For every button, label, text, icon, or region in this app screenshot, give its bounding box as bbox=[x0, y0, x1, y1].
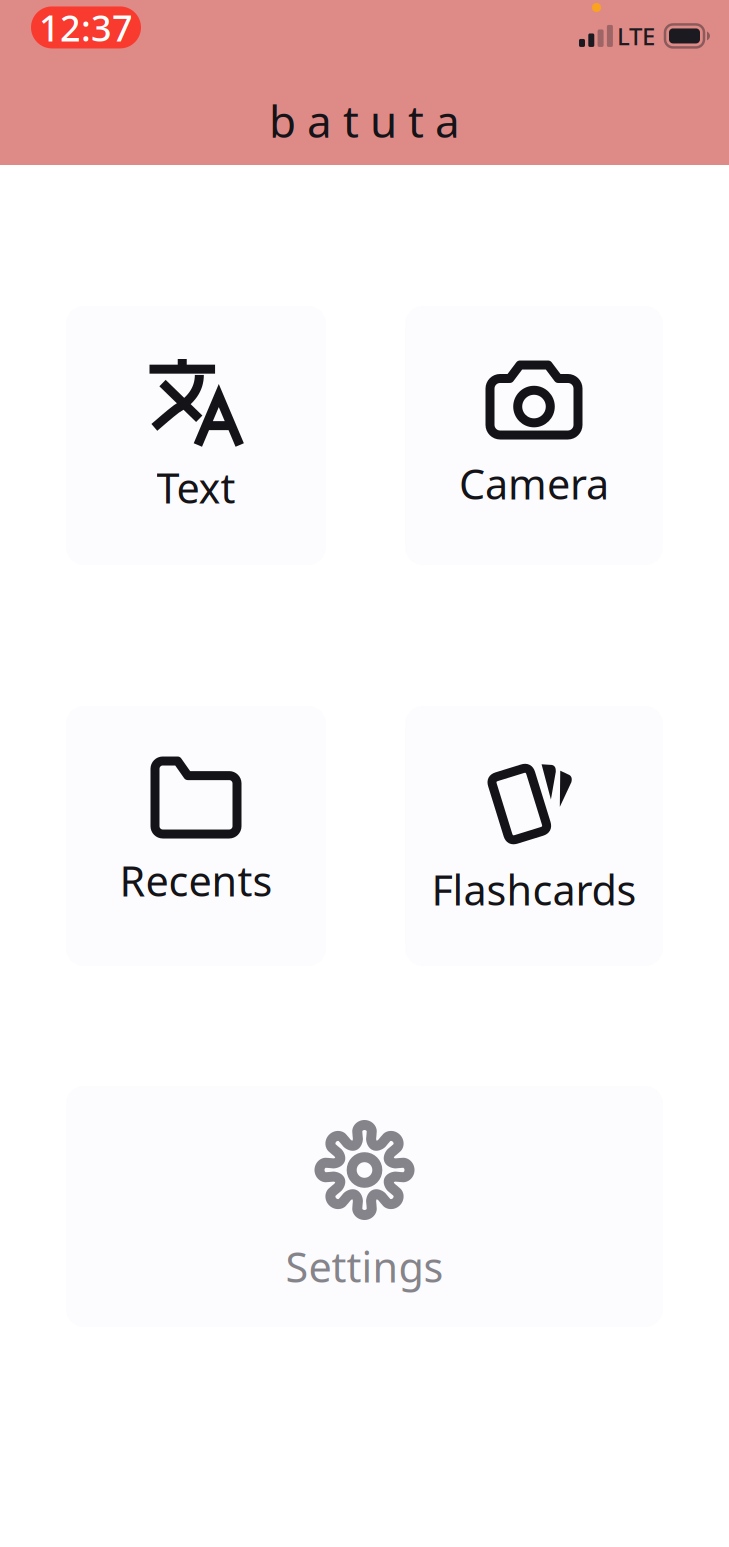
button[interactable]: Camera bbox=[405, 306, 663, 565]
staticText: Settings bbox=[285, 1239, 443, 1294]
staticText: Text bbox=[156, 460, 235, 515]
staticText: Flashcards bbox=[431, 862, 636, 917]
button[interactable]: Settings bbox=[66, 1086, 663, 1327]
staticText: Recents bbox=[119, 853, 272, 908]
staticText: 12:37 bbox=[39, 3, 133, 51]
button[interactable]: Recents bbox=[66, 706, 326, 966]
button[interactable]: Text bbox=[66, 306, 326, 565]
button[interactable]: Flashcards bbox=[405, 706, 663, 966]
staticText: LTE bbox=[617, 20, 655, 52]
staticText: b a t u t a bbox=[269, 92, 460, 150]
staticText: Camera bbox=[459, 456, 609, 511]
